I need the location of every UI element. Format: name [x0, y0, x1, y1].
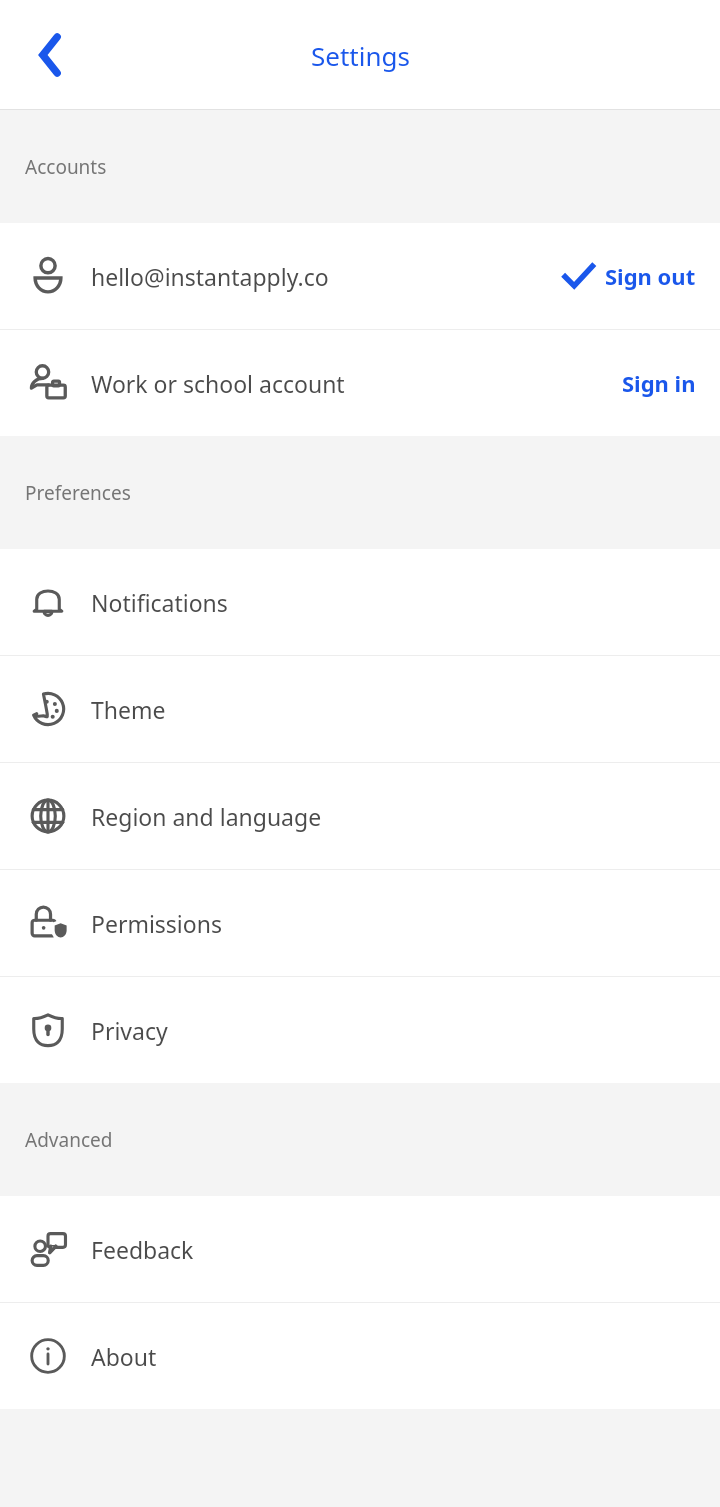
staticText: Work or school account — [91, 368, 345, 399]
staticText: Region and language — [91, 801, 322, 832]
staticText: Theme — [91, 694, 166, 725]
button[interactable]: Permissions — [0, 870, 720, 976]
staticText: Settings — [311, 38, 410, 73]
button[interactable]: Feedback — [0, 1196, 720, 1302]
staticText: Privacy — [91, 1015, 168, 1046]
staticText: Sign in — [622, 368, 696, 398]
button[interactable]: Theme — [0, 656, 720, 762]
staticText: Permissions — [91, 908, 222, 939]
button[interactable]: About — [0, 1303, 720, 1409]
staticText: Sign out — [605, 261, 696, 291]
staticText: hello@instantapply.co — [91, 261, 329, 292]
staticText: Feedback — [91, 1234, 194, 1265]
button[interactable]: Region and language — [0, 763, 720, 869]
staticText: Advanced — [25, 1127, 113, 1153]
staticText: About — [91, 1341, 157, 1372]
button[interactable]: Privacy — [0, 977, 720, 1083]
button[interactable]: Back — [16, 21, 84, 89]
button[interactable]: Notifications — [0, 549, 720, 655]
button[interactable]: Sign in — [622, 368, 696, 398]
button[interactable]: Work or school account — [0, 330, 720, 436]
button[interactable]: Sign out — [559, 257, 696, 295]
staticText: Notifications — [91, 587, 228, 618]
staticText: Preferences — [25, 480, 131, 506]
button[interactable]: hello@instantapply.co — [0, 223, 720, 329]
staticText: Accounts — [25, 154, 107, 180]
